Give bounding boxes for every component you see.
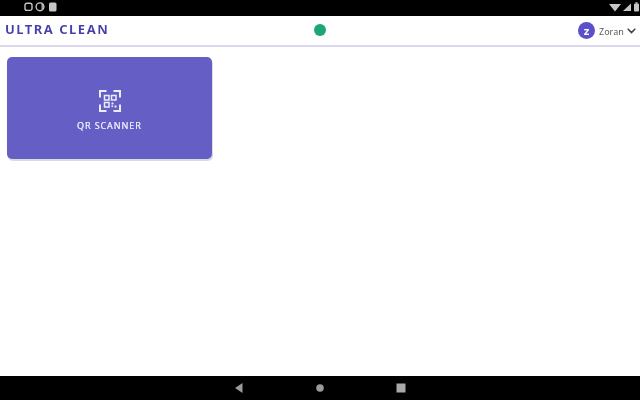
staticText: Z bbox=[584, 25, 590, 37]
staticText: ULTRA CLEAN bbox=[5, 20, 110, 38]
button[interactable] bbox=[300, 376, 340, 400]
staticText: QR SCANNER bbox=[77, 119, 142, 131]
button[interactable] bbox=[381, 376, 421, 400]
button[interactable]: QR SCANNER bbox=[7, 57, 212, 159]
button[interactable]: Z bbox=[578, 22, 636, 39]
button[interactable] bbox=[219, 376, 259, 400]
staticText: Zoran bbox=[599, 25, 624, 37]
button[interactable] bbox=[314, 24, 326, 36]
